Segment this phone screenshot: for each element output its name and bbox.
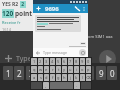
staticText: Type message xyxy=(43,50,68,55)
button[interactable]: e xyxy=(44,66,49,73)
button[interactable]: j xyxy=(68,74,73,81)
button[interactable]: 0 xyxy=(86,58,91,65)
button[interactable]: 2 xyxy=(14,66,24,80)
button[interactable]: 0 xyxy=(107,66,117,80)
staticText: 7 xyxy=(75,68,80,79)
staticText: 5 xyxy=(57,59,60,64)
staticText: i xyxy=(76,67,78,72)
staticText: 120 xyxy=(2,9,14,18)
button[interactable]: 4 xyxy=(38,66,48,80)
button[interactable]: t xyxy=(56,66,61,73)
staticText: point xyxy=(15,9,33,18)
staticText: 0 xyxy=(110,68,115,79)
button[interactable]: 9 xyxy=(80,58,85,65)
button[interactable]: 3 xyxy=(44,58,49,65)
button[interactable]: q xyxy=(31,66,37,73)
button[interactable]: 2 xyxy=(38,58,43,65)
button[interactable]: l xyxy=(80,74,85,81)
button[interactable]: o xyxy=(80,66,85,73)
staticText: e xyxy=(45,67,48,72)
button[interactable]: w xyxy=(38,66,43,73)
staticText: 7 xyxy=(69,59,72,64)
button[interactable]: 1 xyxy=(3,66,13,80)
button[interactable]: 8 xyxy=(84,66,94,80)
button[interactable]: Send message xyxy=(79,49,86,56)
button[interactable]: 8 xyxy=(74,58,79,65)
button[interactable]: . xyxy=(74,82,80,89)
button[interactable]: 3 xyxy=(26,66,36,80)
button[interactable]: d xyxy=(44,74,49,81)
button[interactable]: 7 xyxy=(68,58,73,65)
staticText: 4 xyxy=(51,59,54,64)
button[interactable]: h xyxy=(62,74,67,81)
staticText: w xyxy=(39,67,43,72)
button[interactable]: Back xyxy=(35,48,86,57)
button[interactable]: 9 xyxy=(96,66,106,80)
button[interactable]: 5 xyxy=(49,66,59,80)
button[interactable]: More options xyxy=(81,6,86,11)
button[interactable]: 6 xyxy=(62,58,67,65)
staticText: 9696 xyxy=(45,5,59,13)
staticText: t xyxy=(58,67,60,72)
button[interactable]: 1 xyxy=(31,58,37,65)
button[interactable]: ⌫ xyxy=(86,74,91,81)
staticText: , xyxy=(45,83,47,88)
staticText: om SIM1 aaa xyxy=(88,34,113,39)
staticText: a xyxy=(33,75,36,80)
staticText: . xyxy=(76,83,78,88)
staticText: f xyxy=(52,75,54,80)
button[interactable]: Back xyxy=(35,50,41,56)
staticText: 6 xyxy=(64,68,69,79)
staticText: 9 xyxy=(99,68,104,79)
button[interactable]: s xyxy=(38,74,43,81)
button[interactable]: 4 xyxy=(50,58,55,65)
button[interactable]: f xyxy=(50,74,55,81)
staticText: 5 xyxy=(52,68,57,79)
staticText: 9 xyxy=(81,59,84,64)
other: Attach xyxy=(4,54,13,63)
staticText: Type xyxy=(16,54,32,64)
staticText: 4 xyxy=(41,68,46,79)
button[interactable]: u xyxy=(68,66,73,73)
button[interactable] xyxy=(37,17,79,30)
staticText: g xyxy=(57,75,60,80)
staticText: 6 xyxy=(63,59,66,64)
staticText: 8 xyxy=(75,59,78,64)
staticText: 1 xyxy=(33,59,36,64)
staticText: ⌫ xyxy=(86,75,91,80)
button[interactable]: 6 xyxy=(61,66,71,80)
staticText: 3 xyxy=(45,59,48,64)
button[interactable]: i xyxy=(74,66,79,73)
button[interactable]: Attach xyxy=(0,51,120,66)
staticText: 2 xyxy=(17,68,22,79)
staticText: u xyxy=(69,67,72,72)
staticText: YES R2 xyxy=(2,1,19,8)
staticText: 2 xyxy=(39,59,42,64)
button[interactable]: Call xyxy=(74,5,81,12)
button[interactable]: a xyxy=(31,74,37,81)
button[interactable]: p xyxy=(86,66,91,73)
staticText: s xyxy=(40,75,42,80)
button[interactable]: Send xyxy=(99,50,116,67)
button[interactable]: 5 xyxy=(56,58,61,65)
staticText: 8 xyxy=(87,68,92,79)
staticText: p xyxy=(87,67,90,72)
button[interactable]: k xyxy=(74,74,79,81)
button[interactable]: y xyxy=(62,66,67,73)
button[interactable]: r xyxy=(50,66,55,73)
staticText: 2 xyxy=(20,1,26,8)
staticText: 0 xyxy=(87,59,90,64)
staticText: j xyxy=(70,75,72,80)
staticText: 3 xyxy=(29,68,34,79)
button[interactable]: 7 xyxy=(72,66,82,80)
button[interactable]: g xyxy=(56,74,61,81)
button[interactable] xyxy=(69,42,86,47)
button[interactable]: , xyxy=(43,82,49,89)
staticText: y xyxy=(63,67,66,72)
button[interactable]: New message xyxy=(35,5,42,12)
staticText: k xyxy=(75,75,78,80)
staticText: q xyxy=(33,67,36,72)
